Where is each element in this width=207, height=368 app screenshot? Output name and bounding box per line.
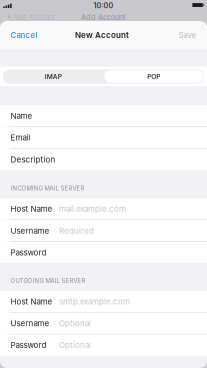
staticText: Cancel <box>10 30 37 40</box>
staticText: smtp.example.com <box>59 297 130 306</box>
button[interactable]: IMAP <box>3 69 103 84</box>
staticText: Save <box>178 30 196 40</box>
staticText: POP <box>147 72 160 81</box>
button[interactable]: Name <box>0 105 207 126</box>
button[interactable]: Host Name <box>0 291 207 312</box>
button[interactable]: Username <box>0 220 207 241</box>
staticText: Description <box>10 155 55 164</box>
staticText: Optional <box>59 340 91 350</box>
button[interactable]: Save <box>168 21 207 49</box>
staticText: Host Name <box>10 297 52 306</box>
button[interactable]: Username <box>0 313 207 334</box>
staticText: Password <box>10 248 46 257</box>
staticText: Add Account <box>81 13 126 22</box>
button[interactable]: POP <box>103 69 204 84</box>
staticText: OUTGOING MAIL SERVER <box>10 277 85 284</box>
staticText: Email <box>10 133 30 143</box>
button[interactable]: Email <box>0 127 207 148</box>
staticText: New Account <box>75 30 129 40</box>
staticText: IMAP <box>45 72 62 81</box>
staticText: Optional <box>59 318 91 328</box>
button[interactable]: Description <box>0 149 207 170</box>
button[interactable]: Host Name <box>0 198 207 220</box>
staticText: mail.example.com <box>59 204 126 214</box>
staticText: Add Account <box>11 13 55 22</box>
button[interactable]: Cancel <box>0 21 48 49</box>
staticText: Name <box>10 111 32 121</box>
staticText: 10:00 <box>93 1 113 10</box>
staticText: INCOMING MAIL SERVER <box>10 185 84 192</box>
button[interactable]: Password <box>0 242 207 263</box>
staticText: Required <box>59 226 94 236</box>
staticText: Username <box>10 318 49 328</box>
staticText: Host Name <box>10 204 52 214</box>
staticText: Password <box>10 340 46 350</box>
button[interactable]: Password <box>0 334 207 356</box>
staticText: Username <box>10 226 49 236</box>
